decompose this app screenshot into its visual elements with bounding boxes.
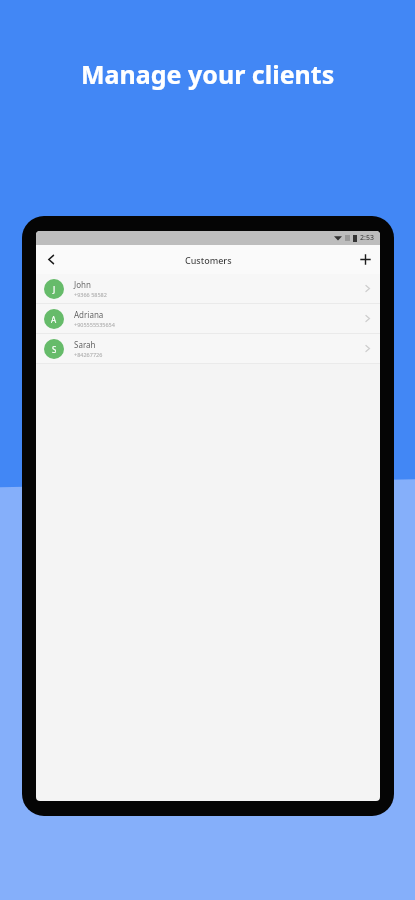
button[interactable]: Add customer	[350, 245, 380, 274]
staticText: S	[52, 344, 57, 355]
staticText: 2:53	[360, 233, 374, 243]
button[interactable]: S	[36, 334, 380, 363]
staticText: +905555535654	[74, 321, 115, 328]
button[interactable]: J	[36, 274, 380, 303]
staticText: Sarah	[74, 339, 96, 350]
staticText: Customers	[185, 254, 232, 266]
staticText: Adriana	[74, 309, 104, 320]
staticText: J	[53, 284, 56, 295]
staticText: Manage your clients	[81, 57, 335, 91]
button[interactable]: Back	[36, 245, 66, 274]
staticText: John	[74, 279, 91, 290]
button[interactable]: A	[36, 304, 380, 333]
staticText: A	[51, 314, 57, 325]
staticText: +9366 58582	[74, 291, 107, 298]
staticText: +84267726	[74, 351, 103, 358]
